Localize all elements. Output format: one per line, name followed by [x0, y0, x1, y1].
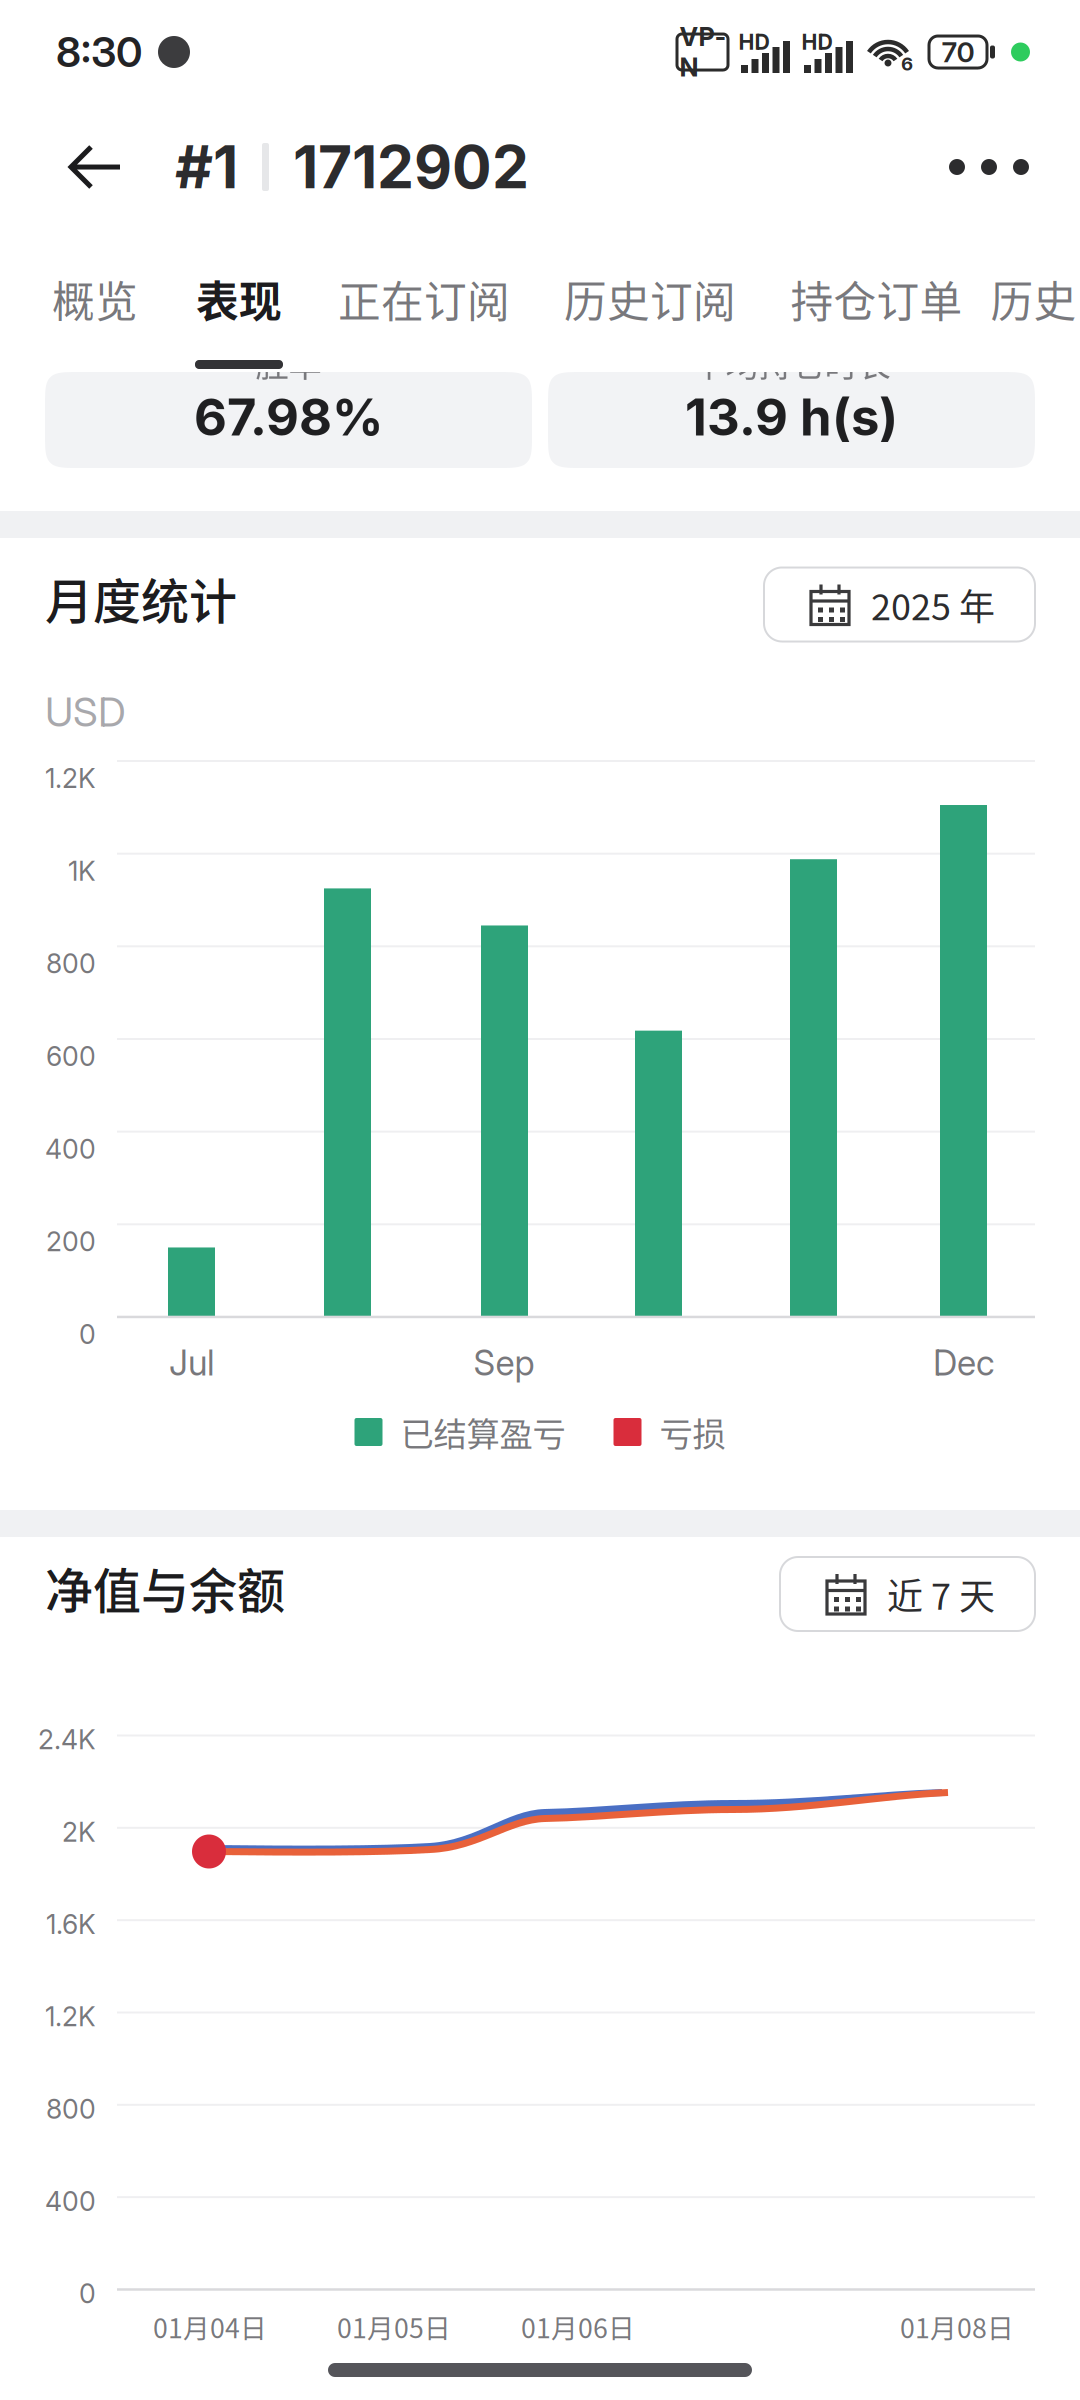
staticText: 平均持仓时长: [692, 338, 890, 386]
staticText: 13.9 h(s): [685, 386, 898, 448]
button[interactable]: 历史订阅: [537, 252, 762, 372]
button[interactable]: 持仓订单: [762, 252, 990, 372]
staticText: 历史订阅: [564, 268, 736, 330]
button[interactable]: 正在订阅: [310, 252, 537, 372]
staticText: 近 7 天: [887, 1568, 995, 1620]
staticText: 1.2K: [45, 2000, 96, 2033]
staticText: 2025 年: [871, 578, 995, 630]
staticText: HD: [738, 29, 769, 55]
staticText: 0: [79, 1318, 96, 1350]
staticText: 表现: [196, 268, 282, 330]
staticText: 概览: [52, 268, 138, 330]
staticText: 400: [45, 2185, 96, 2217]
staticText: Jul: [169, 1342, 215, 1384]
staticText: 0: [79, 2277, 96, 2310]
staticText: Dec: [933, 1342, 995, 1384]
button[interactable]: Back: [44, 104, 148, 230]
staticText: VPN: [679, 21, 725, 83]
button[interactable]: More options: [919, 114, 1059, 220]
staticText: 67.98%: [194, 386, 383, 448]
staticText: 胜率: [255, 338, 321, 386]
button[interactable]: 近 7 天: [780, 1557, 1035, 1631]
staticText: #1: [175, 131, 238, 202]
staticText: 200: [46, 1225, 96, 1258]
button[interactable]: 概览: [22, 252, 167, 372]
staticText: HD: [801, 29, 832, 55]
staticText: 1712902: [293, 131, 529, 202]
staticText: 月度统计: [45, 563, 237, 633]
staticText: 1K: [68, 855, 96, 887]
staticText: 600: [46, 1040, 96, 1072]
staticText: 8:30: [56, 27, 142, 77]
staticText: 2.4K: [38, 1723, 96, 1756]
button[interactable]: 2025 年: [764, 567, 1035, 641]
staticText: Sep: [473, 1342, 534, 1384]
staticText: 净值与余额: [45, 1553, 285, 1622]
button[interactable]: 表现: [167, 252, 310, 372]
staticText: 01月04日: [153, 2307, 267, 2346]
staticText: 亏损: [659, 1408, 725, 1456]
staticText: 历史: [990, 268, 1076, 330]
staticText: 800: [46, 2093, 96, 2125]
staticText: 01月08日: [900, 2307, 1014, 2346]
button[interactable]: 历史: [990, 252, 1080, 372]
staticText: 已结算盈亏: [400, 1408, 565, 1456]
staticText: 01月06日: [521, 2307, 635, 2346]
staticText: 6: [901, 52, 913, 75]
staticText: 400: [45, 1133, 96, 1165]
staticText: 正在订阅: [338, 268, 510, 330]
staticText: 01月05日: [337, 2307, 451, 2346]
staticText: 1.6K: [46, 1908, 96, 1940]
staticText: 1.2K: [45, 762, 96, 794]
staticText: 持仓订单: [790, 268, 962, 330]
staticText: 2K: [62, 1816, 96, 1848]
staticText: 800: [46, 947, 96, 980]
staticText: 70: [941, 35, 974, 69]
staticText: USD: [45, 688, 126, 736]
